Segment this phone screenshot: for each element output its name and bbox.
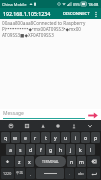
button[interactable]: Shift <box>1 156 14 167</box>
button[interactable]: Hide keyboard <box>85 121 95 131</box>
staticText: t <box>45 134 47 141</box>
button[interactable]: j <box>66 144 75 155</box>
button[interactable]: 中英 <box>15 168 25 179</box>
staticText: f <box>40 146 42 153</box>
button[interactable]: Enter <box>87 168 100 179</box>
button[interactable]: l <box>86 144 95 155</box>
button[interactable]: a <box>6 144 15 155</box>
staticText: , <box>30 171 31 176</box>
staticText: s <box>19 146 22 153</box>
staticText: 00aaa800aaa8Connected to Raspberry <box>2 20 86 26</box>
button[interactable]: , <box>26 168 35 179</box>
staticText: h <box>59 146 63 153</box>
button[interactable]: r <box>31 132 40 143</box>
staticText: a <box>9 146 12 153</box>
staticText: n <box>70 158 74 165</box>
button[interactable]: n <box>67 156 76 167</box>
button[interactable]: g <box>46 144 55 155</box>
button[interactable]: o <box>81 132 90 143</box>
button[interactable]: . <box>65 168 74 179</box>
staticText: 1220 <box>3 171 12 176</box>
button[interactable]: z <box>15 156 24 167</box>
button[interactable]: Backspace <box>87 156 100 167</box>
staticText: 中英 <box>16 171 24 176</box>
button[interactable]: k <box>76 144 85 155</box>
staticText: l <box>90 146 92 153</box>
button[interactable]: Message <box>3 110 85 119</box>
staticText: w <box>13 134 18 141</box>
button[interactable]: 1220 <box>1 168 14 179</box>
button[interactable]: Clipboard <box>6 121 16 131</box>
button[interactable]: Send <box>87 110 99 120</box>
button[interactable]: t <box>41 132 50 143</box>
staticText: z <box>18 158 21 165</box>
button[interactable]: d <box>26 144 35 155</box>
button[interactable]: x <box>25 156 34 167</box>
staticText: p <box>94 134 98 141</box>
staticText: o <box>84 134 88 141</box>
staticText: . <box>69 171 70 176</box>
button[interactable]: w <box>11 132 20 143</box>
staticText: DISCONNECT <box>63 11 90 17</box>
staticText: j <box>70 146 72 153</box>
button[interactable]: i <box>71 132 80 143</box>
staticText: TERMINAL <box>42 159 59 164</box>
staticText: e <box>24 134 27 141</box>
staticText: AT09SS3■◆XF0AT09SS3 <box>2 32 54 38</box>
staticText: u <box>64 134 68 141</box>
button[interactable]: f <box>36 144 45 155</box>
staticText: 18:08 <box>88 2 99 7</box>
button[interactable]: e <box>21 132 30 143</box>
staticText: m <box>79 158 84 165</box>
button[interactable]: More options <box>92 10 100 18</box>
button[interactable]: m <box>77 156 86 167</box>
staticText: x <box>28 158 31 165</box>
staticText: China Mobile <box>2 2 27 7</box>
button[interactable]: h <box>56 144 65 155</box>
button[interactable]: y <box>51 132 60 143</box>
button[interactable]: Input language <box>22 121 32 131</box>
button[interactable]: u <box>61 132 70 143</box>
staticText: k <box>79 146 82 153</box>
staticText: Message <box>3 110 24 117</box>
button[interactable]: Voice input <box>69 121 79 131</box>
button[interactable]: Emoji <box>53 121 63 131</box>
button[interactable]: Stickers <box>38 121 48 131</box>
button[interactable]: TERMINAL <box>35 156 66 167</box>
staticText: q <box>4 134 8 141</box>
staticText: abc <box>78 171 84 176</box>
staticText: 89% <box>73 2 80 7</box>
button[interactable]: p <box>91 132 100 143</box>
button[interactable]: Space <box>36 168 64 179</box>
button[interactable]: DISCONNECT <box>61 10 92 18</box>
staticText: i <box>75 134 77 141</box>
button[interactable]: q <box>1 132 10 143</box>
staticText: 192.168.1.105:1234 <box>3 10 51 17</box>
button[interactable]: s <box>16 144 25 155</box>
button[interactable]: abc <box>75 168 86 179</box>
staticText: r <box>34 134 37 141</box>
staticText: y <box>54 134 57 141</box>
staticText: g <box>49 146 53 153</box>
staticText: Pi•••••••••••••◆•mx00AT09SS3•◆mx00 <box>2 26 81 32</box>
staticText: d <box>29 146 33 153</box>
